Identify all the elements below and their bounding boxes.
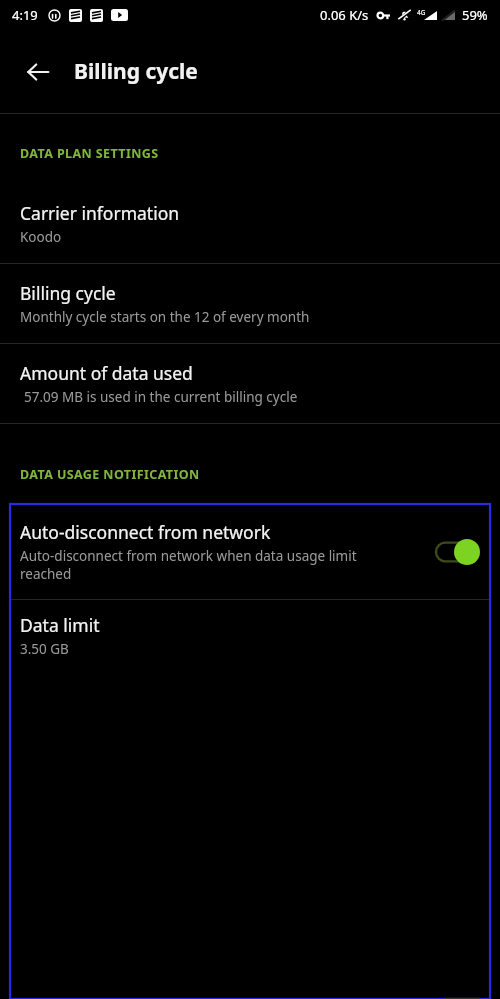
button[interactable]: Carrier information bbox=[0, 184, 500, 263]
staticText: Amount of data used bbox=[20, 361, 193, 385]
button[interactable]: Auto-disconnect from network bbox=[10, 504, 490, 599]
staticText: DATA PLAN SETTINGS bbox=[20, 145, 159, 162]
staticText: 57.09 MB is used in the current billing … bbox=[24, 388, 298, 406]
staticText: Auto-disconnect from network when data u… bbox=[20, 547, 382, 583]
staticText: 0.06 K/s bbox=[320, 6, 369, 24]
button[interactable]: Amount of data used bbox=[0, 344, 500, 423]
staticText: Billing cycle bbox=[20, 281, 116, 305]
staticText: 4:19 bbox=[12, 6, 38, 24]
staticText: Data limit bbox=[20, 613, 100, 637]
staticText: DATA USAGE NOTIFICATION bbox=[20, 466, 200, 483]
staticText: Billing cycle bbox=[74, 57, 198, 86]
button[interactable]: Back bbox=[16, 50, 60, 94]
staticText: Koodo bbox=[20, 228, 62, 246]
staticText: 3.50 GB bbox=[20, 640, 69, 658]
button[interactable]: Toggle on bbox=[436, 539, 480, 565]
staticText: 59% bbox=[462, 6, 488, 24]
staticText: 4G bbox=[417, 8, 426, 17]
button[interactable]: Billing cycle bbox=[0, 264, 500, 343]
button[interactable]: Data limit bbox=[10, 600, 490, 671]
staticText: Carrier information bbox=[20, 201, 180, 225]
staticText: Auto-disconnect from network bbox=[20, 520, 271, 544]
staticText: Monthly cycle starts on the 12 of every … bbox=[20, 308, 310, 326]
